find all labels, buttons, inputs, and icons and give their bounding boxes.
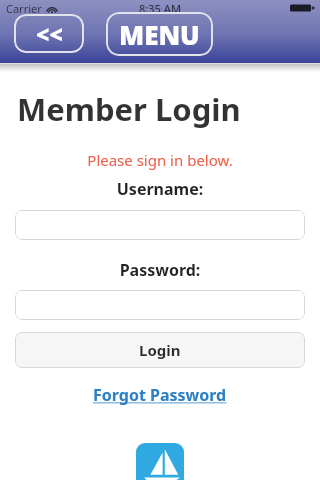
staticText: Member Login: [17, 88, 241, 130]
staticText: Password:: [0, 259, 320, 281]
button[interactable]: Login: [15, 332, 305, 368]
button[interactable]: Back: [14, 14, 84, 53]
button[interactable]: App logo: [136, 443, 184, 480]
staticText: MENU: [119, 17, 200, 52]
button[interactable]: [15, 210, 305, 240]
staticText: Carrier: [6, 1, 42, 16]
button[interactable]: Forgot Password: [87, 382, 233, 408]
staticText: Username:: [0, 178, 320, 200]
staticText: 8:35 AM: [139, 1, 182, 16]
staticText: <<: [36, 18, 63, 49]
staticText: Please sign in below.: [0, 150, 320, 170]
staticText: Login: [139, 340, 181, 360]
button[interactable]: [15, 290, 305, 320]
button[interactable]: MENU: [106, 12, 213, 56]
staticText: Forgot Password: [93, 384, 227, 406]
